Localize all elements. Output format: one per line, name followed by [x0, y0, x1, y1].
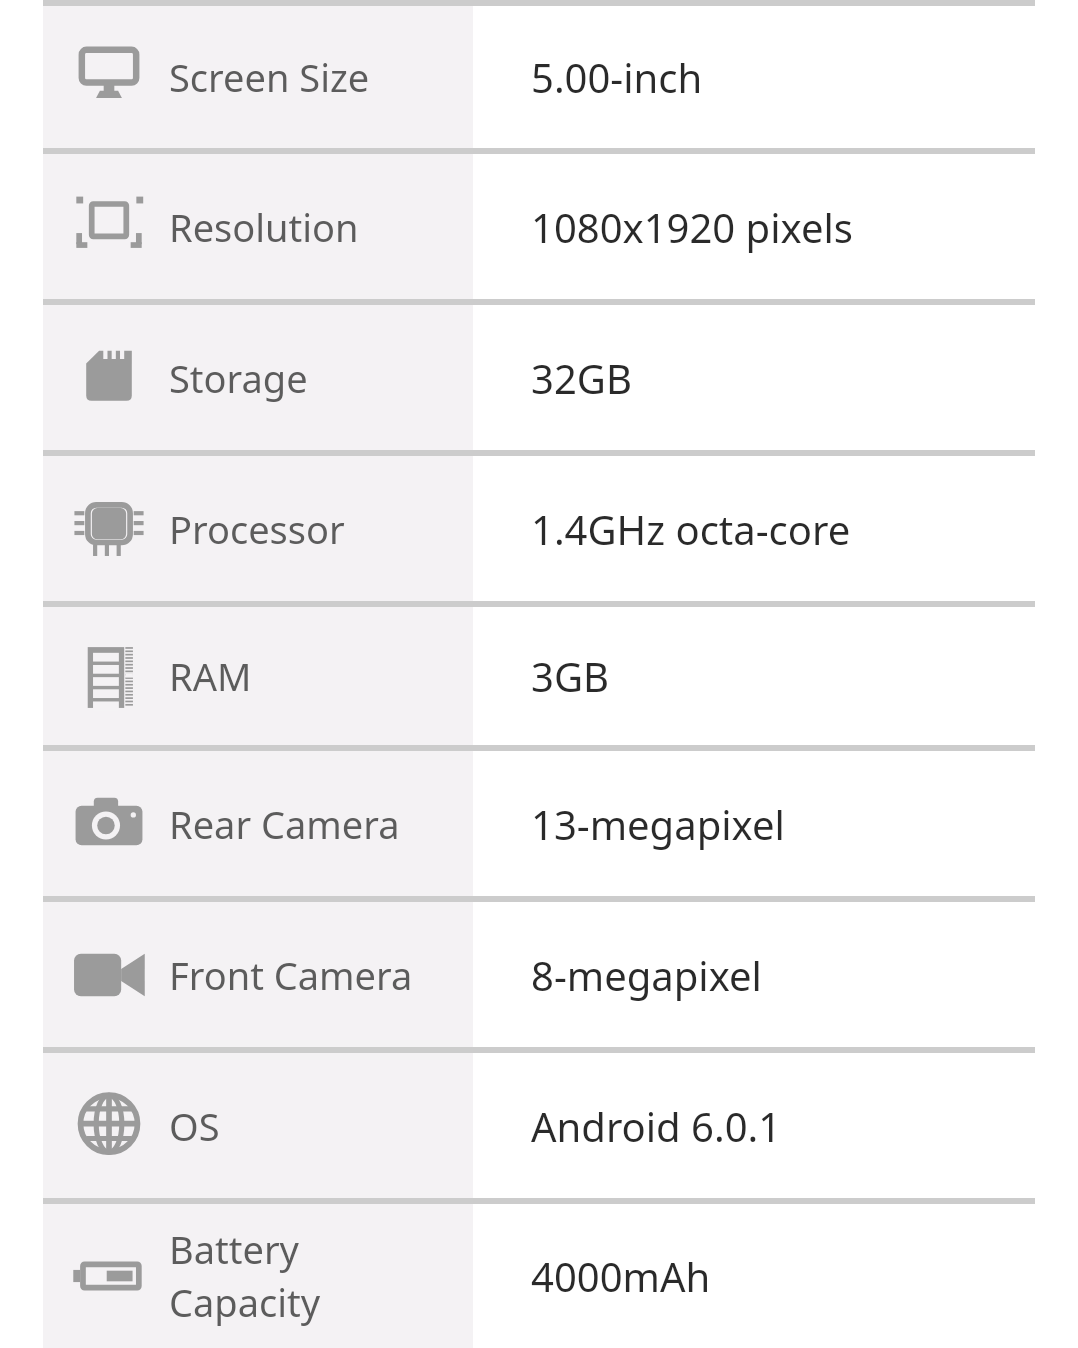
other: Resolution	[71, 189, 147, 265]
staticText: 5.00-inch	[531, 50, 703, 104]
staticText: Resolution	[169, 201, 359, 253]
button[interactable]: Battery capacity	[43, 1204, 1035, 1348]
button[interactable]: Processor	[43, 456, 1035, 601]
staticText: 1080x1920 pixels	[531, 200, 853, 254]
other: Rear camera	[71, 786, 147, 862]
button[interactable]: Resolution	[43, 154, 1035, 299]
other: Front camera	[71, 937, 147, 1013]
staticText: Rear Camera	[169, 798, 400, 850]
button[interactable]: Storage	[43, 305, 1035, 450]
button[interactable]: Screen size	[43, 6, 1035, 148]
staticText: Front Camera	[169, 949, 413, 1001]
staticText: Battery Capacity	[169, 1223, 321, 1329]
other: Battery capacity	[71, 1238, 147, 1314]
other: Storage	[71, 340, 147, 416]
other: Processor	[71, 491, 147, 567]
staticText: 8-megapixel	[531, 948, 762, 1002]
button[interactable]: RAM	[43, 607, 1035, 745]
staticText: 1.4GHz octa-core	[531, 502, 851, 556]
other: Screen size	[71, 39, 147, 115]
staticText: Screen Size	[169, 51, 370, 103]
staticText: RAM	[169, 650, 252, 702]
staticText: Processor	[169, 503, 345, 555]
staticText: Storage	[169, 352, 308, 404]
button[interactable]: Operating system	[43, 1053, 1035, 1198]
button[interactable]: Front camera	[43, 902, 1035, 1047]
other: RAM	[71, 638, 147, 714]
staticText: Android 6.0.1	[531, 1099, 782, 1153]
staticText: 3GB	[531, 649, 609, 703]
other: Operating system	[71, 1088, 147, 1164]
staticText: 13-megapixel	[531, 797, 785, 851]
button[interactable]: Rear camera	[43, 751, 1035, 896]
staticText: OS	[169, 1100, 220, 1152]
staticText: 4000mAh	[531, 1249, 711, 1303]
staticText: 32GB	[531, 351, 632, 405]
